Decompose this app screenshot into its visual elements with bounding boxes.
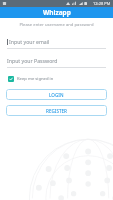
staticText: REGISTER (46, 108, 67, 114)
staticText: Keep me signed in (17, 76, 54, 82)
button[interactable]: LOGIN (6, 89, 107, 100)
staticText: Input your Password (7, 57, 58, 64)
staticText: 12:28 PM (93, 1, 111, 6)
button[interactable]: Input your Password (7, 57, 106, 68)
button[interactable]: REGISTER (6, 105, 107, 116)
staticText: Input your email (9, 38, 50, 45)
button[interactable]: Keep me signed in (7, 75, 55, 83)
staticText: Whizapp (43, 8, 71, 17)
staticText: Please enter username and password (0, 22, 113, 28)
staticText: LOGIN (49, 92, 64, 98)
button[interactable]: Input your email (7, 38, 106, 49)
